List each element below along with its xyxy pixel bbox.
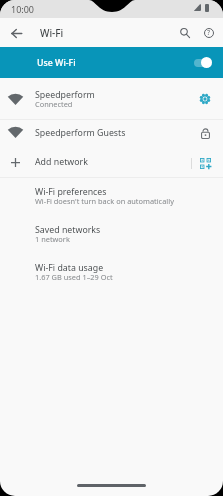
- staticText: Saved networks: [35, 224, 101, 236]
- button[interactable]: Wi-Fi data usage: [0, 254, 223, 292]
- button[interactable]: Network settings: [195, 89, 215, 109]
- staticText: Add network: [35, 156, 88, 168]
- staticText: Wi-Fi: [40, 26, 64, 40]
- staticText: ?: [207, 28, 211, 38]
- button[interactable]: Back: [4, 21, 28, 45]
- button[interactable]: Speedperform: [0, 78, 223, 119]
- staticText: Connected: [35, 99, 73, 109]
- button[interactable]: Add network: [0, 149, 223, 177]
- staticText: Wi-Fi preferences: [35, 186, 107, 198]
- staticText: 1.67 GB used 1–29 Oct: [35, 272, 113, 282]
- button[interactable]: Wi-Fi preferences: [0, 178, 223, 216]
- button[interactable]: Search: [173, 21, 197, 45]
- button[interactable]: Use Wi-Fi: [0, 47, 223, 78]
- button[interactable]: Speedperform Guests: [0, 120, 223, 149]
- staticText: Wi-Fi doesn't turn back on automatically: [35, 196, 174, 206]
- button[interactable]: Scan QR code: [195, 153, 215, 173]
- button[interactable]: Saved networks: [0, 216, 223, 254]
- staticText: Use Wi-Fi: [37, 57, 76, 69]
- staticText: Speedperform Guests: [35, 127, 126, 139]
- staticText: Speedperform: [35, 89, 95, 101]
- staticText: 1 network: [35, 234, 70, 244]
- staticText: Wi-Fi data usage: [35, 262, 104, 274]
- button[interactable]: Help: [197, 21, 221, 45]
- staticText: 10:00: [11, 3, 35, 15]
